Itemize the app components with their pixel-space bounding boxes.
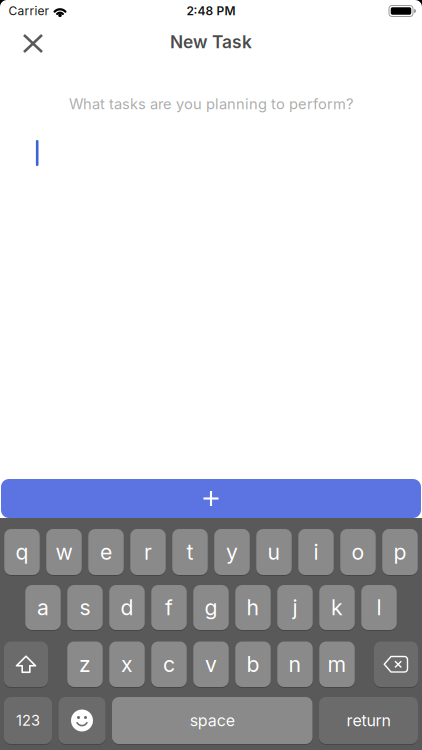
button[interactable]: t — [172, 528, 208, 576]
button[interactable]: o — [340, 528, 376, 576]
button[interactable]: s — [67, 584, 103, 631]
button[interactable] — [374, 641, 418, 687]
button[interactable]: space — [112, 696, 312, 745]
staticText: o — [351, 539, 364, 565]
staticText: f — [165, 595, 173, 620]
button[interactable]: u — [256, 528, 292, 576]
button[interactable] — [1, 479, 421, 518]
button[interactable]: k — [319, 584, 355, 631]
staticText: space — [190, 711, 235, 730]
staticText: What tasks are you planning to perform? — [69, 95, 353, 113]
staticText: q — [15, 539, 28, 565]
button[interactable]: h — [235, 584, 271, 631]
button[interactable]: g — [193, 584, 229, 631]
button[interactable]: l — [361, 584, 397, 631]
button[interactable]: a — [25, 584, 61, 631]
button[interactable]: p — [382, 528, 418, 576]
staticText: u — [267, 539, 280, 565]
staticText: k — [331, 595, 343, 620]
button[interactable]: w — [46, 528, 82, 576]
staticText: d — [120, 595, 133, 620]
staticText: y — [226, 539, 238, 565]
staticText: r — [144, 539, 152, 565]
button[interactable]: x — [109, 640, 145, 688]
staticText: p — [393, 539, 406, 565]
staticText: v — [205, 652, 217, 677]
button[interactable]: y — [214, 528, 250, 576]
button[interactable]: d — [109, 584, 145, 631]
button[interactable]: j — [277, 584, 313, 631]
button[interactable]: c — [151, 640, 187, 688]
button[interactable] — [58, 697, 105, 744]
button[interactable]: n — [277, 640, 313, 688]
button[interactable]: return — [319, 696, 418, 745]
button[interactable]: i — [298, 528, 334, 576]
button[interactable]: b — [235, 640, 271, 688]
staticText: x — [121, 652, 133, 677]
staticText: return — [346, 711, 390, 730]
staticText: i — [313, 539, 318, 565]
staticText: a — [37, 595, 49, 620]
staticText: m — [327, 652, 346, 677]
staticText: e — [100, 539, 112, 565]
staticText: z — [79, 652, 91, 677]
button[interactable]: q — [4, 528, 40, 576]
button[interactable]: e — [88, 528, 124, 576]
staticText: j — [292, 595, 297, 620]
button[interactable]: r — [130, 528, 166, 576]
staticText: t — [186, 539, 193, 565]
button[interactable] — [4, 640, 48, 688]
staticText: b — [246, 652, 259, 677]
button[interactable]: f — [151, 584, 187, 631]
button[interactable]: z — [67, 640, 103, 688]
staticText: New Task — [170, 32, 252, 52]
staticText: h — [246, 595, 259, 620]
staticText: s — [79, 595, 90, 620]
staticText: g — [204, 595, 217, 620]
staticText: l — [376, 595, 381, 620]
staticText: Carrier — [8, 4, 49, 18]
staticText: 2:48 PM — [186, 4, 235, 18]
staticText: w — [55, 539, 72, 565]
staticText: 123 — [16, 712, 40, 729]
button[interactable]: 123 — [4, 696, 52, 745]
button[interactable] — [16, 26, 50, 60]
button[interactable]: v — [193, 640, 229, 688]
button[interactable]: m — [319, 640, 355, 688]
staticText: c — [163, 652, 175, 677]
staticText: n — [288, 652, 301, 677]
